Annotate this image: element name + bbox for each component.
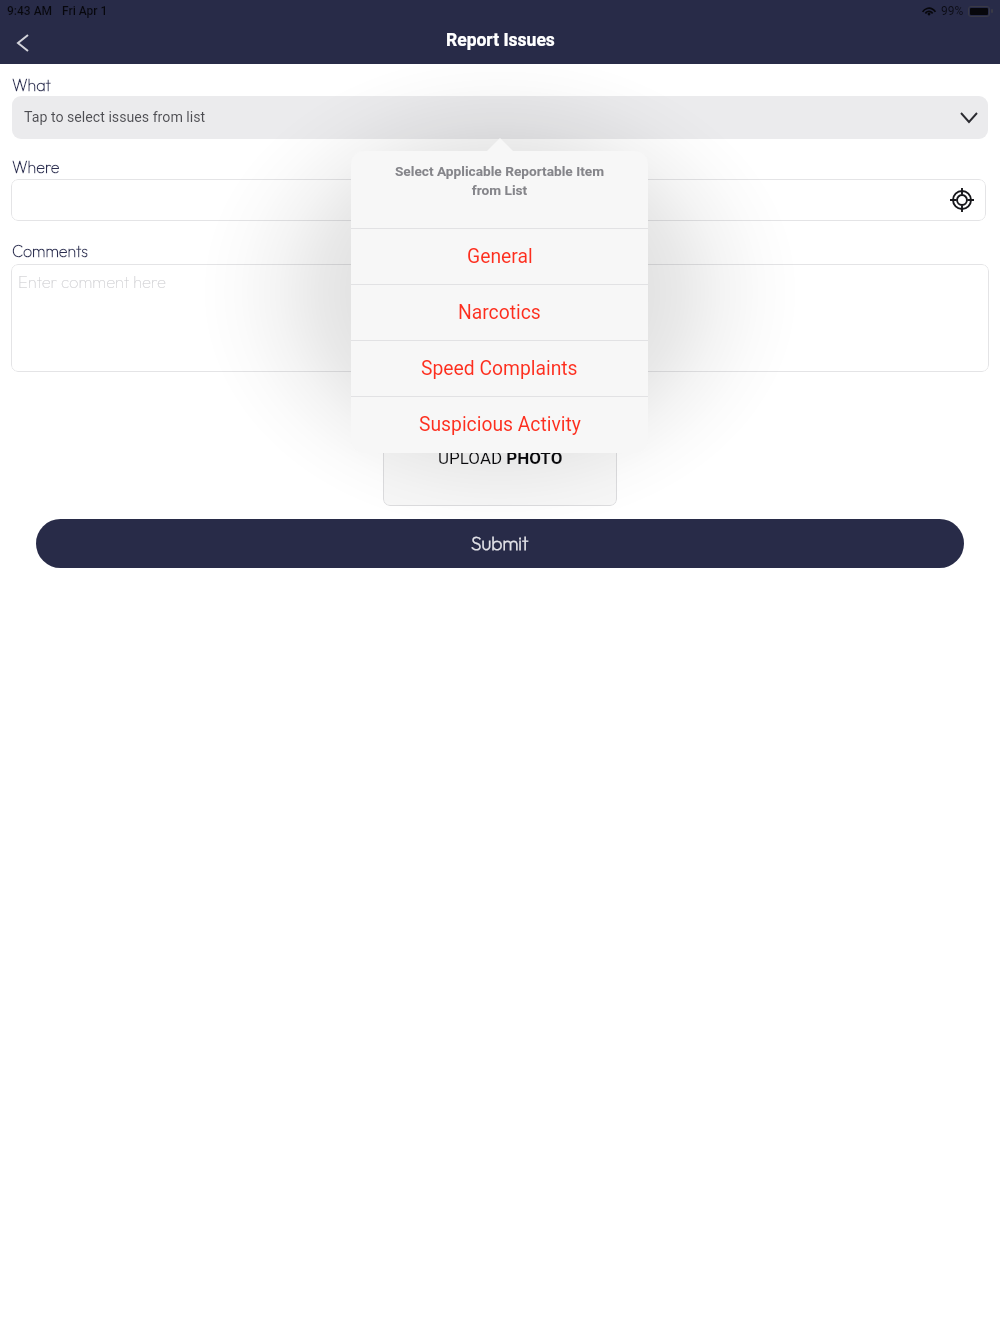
staticText: Enter comment here [18,271,166,292]
button[interactable]: Tap to select issues from list [12,96,988,139]
staticText: Fri Apr 1 [62,4,108,18]
button[interactable]: Submit [36,519,964,568]
staticText: What [12,75,51,95]
staticText: Submit [471,531,529,555]
staticText: 99% [941,4,964,18]
button[interactable]: Back [0,21,46,64]
button[interactable]: Enter comment here [11,264,989,372]
button[interactable]: Suspicious Activity [351,397,648,452]
button[interactable]: Speed Complaints [351,341,648,396]
staticText: Suspicious Activity [419,413,581,436]
button[interactable]: Use current location [11,179,986,221]
staticText: Where [12,157,60,177]
button[interactable]: UPLOAD PHOTO [383,439,617,506]
staticText: 9:43 AM [7,4,53,18]
staticText: General [467,245,533,268]
staticText: Comments [12,241,88,261]
staticText: Tap to select issues from list [24,109,206,126]
staticText: UPLOAD PHOTO [438,448,563,468]
staticText: Narcotics [458,301,541,324]
staticText: Report Issues [446,30,555,51]
staticText: Select Applicable Reportable Item from L… [351,163,648,198]
staticText: Speed Complaints [421,357,578,380]
button[interactable]: Narcotics [351,285,648,340]
button[interactable]: Use current location [950,188,974,212]
button[interactable]: General [351,229,648,284]
